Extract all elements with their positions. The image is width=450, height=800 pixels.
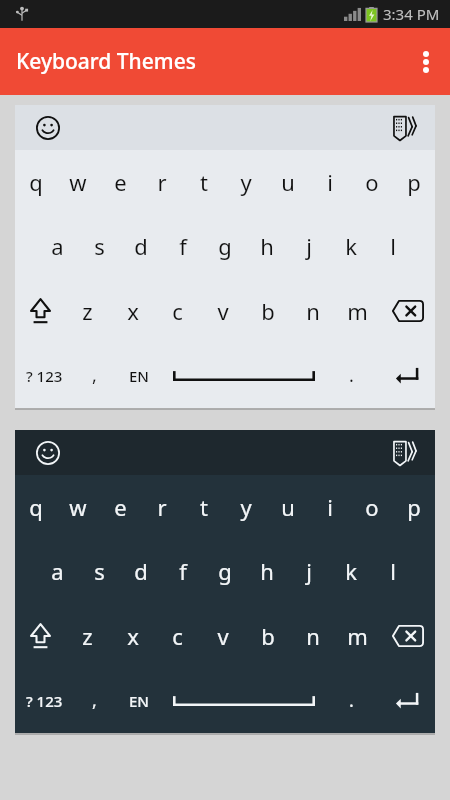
button[interactable]: ? 123	[15, 343, 74, 408]
button[interactable]: x	[110, 278, 155, 343]
button[interactable]: x	[110, 603, 155, 668]
button[interactable]: h	[246, 539, 288, 603]
button[interactable]: j	[288, 539, 330, 603]
button[interactable]: n	[290, 278, 335, 343]
button[interactable]: t	[183, 475, 225, 539]
button[interactable]: Backspace	[380, 278, 435, 343]
button[interactable]: e	[99, 150, 141, 214]
staticText: s	[94, 231, 105, 261]
button[interactable]: z	[65, 278, 110, 343]
button[interactable]: c	[155, 278, 200, 343]
button[interactable]: y	[225, 150, 267, 214]
button[interactable]: b	[245, 603, 290, 668]
button[interactable]: p	[393, 150, 435, 214]
button[interactable]: q	[15, 150, 57, 214]
staticText: f	[179, 556, 187, 586]
staticText: q	[29, 167, 43, 197]
button[interactable]: z	[65, 603, 110, 668]
button[interactable]: ? 123	[15, 668, 74, 733]
button[interactable]: Emoji	[33, 113, 63, 143]
button[interactable]: r	[141, 150, 183, 214]
staticText: t	[200, 492, 208, 522]
button[interactable]: f	[162, 214, 204, 278]
button[interactable]: Emoji	[33, 438, 63, 468]
staticText: d	[134, 231, 148, 261]
button[interactable]: EN	[115, 343, 163, 408]
button[interactable]: o	[351, 150, 393, 214]
staticText: ? 123	[26, 366, 63, 386]
button[interactable]: p	[393, 475, 435, 539]
button[interactable]: q	[15, 475, 57, 539]
button[interactable]: Switch keyboard theme	[390, 438, 420, 468]
staticText: EN	[129, 366, 149, 386]
button[interactable]: w	[57, 150, 99, 214]
button[interactable]: y	[225, 475, 267, 539]
button[interactable]: w	[57, 475, 99, 539]
button[interactable]: l	[372, 539, 414, 603]
button[interactable]: Light keyboard theme	[15, 105, 435, 408]
button[interactable]: More options	[402, 38, 450, 86]
button[interactable]: g	[204, 539, 246, 603]
button[interactable]: Dark keyboard theme	[15, 430, 435, 733]
staticText: l	[390, 556, 396, 586]
staticText: t	[200, 167, 208, 197]
button[interactable]: .	[325, 343, 378, 408]
button[interactable]: d	[120, 539, 162, 603]
staticText: EN	[129, 691, 149, 711]
staticText: n	[306, 296, 320, 326]
button[interactable]: Enter	[378, 343, 435, 408]
staticText: s	[94, 556, 105, 586]
button[interactable]: Space	[163, 343, 325, 408]
staticText: Keyboard Themes	[16, 47, 196, 76]
button[interactable]: a	[36, 214, 78, 278]
button[interactable]: m	[335, 278, 380, 343]
staticText: v	[217, 621, 229, 651]
button[interactable]: v	[200, 603, 245, 668]
button[interactable]: .	[325, 668, 378, 733]
button[interactable]: b	[245, 278, 290, 343]
button[interactable]: a	[36, 539, 78, 603]
button[interactable]: e	[99, 475, 141, 539]
button[interactable]: i	[309, 150, 351, 214]
button[interactable]: s	[78, 214, 120, 278]
button[interactable]: Switch keyboard theme	[390, 113, 420, 143]
button[interactable]: h	[246, 214, 288, 278]
button[interactable]: s	[78, 539, 120, 603]
staticText: w	[69, 492, 87, 522]
button[interactable]: ,	[74, 343, 115, 408]
staticText: k	[345, 231, 357, 261]
button[interactable]: ,	[74, 668, 115, 733]
staticText: l	[390, 231, 396, 261]
button[interactable]: u	[267, 150, 309, 214]
button[interactable]: Enter	[378, 668, 435, 733]
button[interactable]: Backspace	[380, 603, 435, 668]
staticText: e	[114, 492, 127, 522]
button[interactable]: i	[309, 475, 351, 539]
button[interactable]: g	[204, 214, 246, 278]
staticText: m	[347, 621, 368, 651]
button[interactable]: j	[288, 214, 330, 278]
button[interactable]: Shift	[15, 278, 65, 343]
button[interactable]: l	[372, 214, 414, 278]
staticText: a	[51, 231, 64, 261]
staticText: o	[365, 167, 379, 197]
button[interactable]: t	[183, 150, 225, 214]
button[interactable]: d	[120, 214, 162, 278]
button[interactable]: Shift	[15, 603, 65, 668]
staticText: h	[260, 556, 274, 586]
button[interactable]: k	[330, 214, 372, 278]
button[interactable]: u	[267, 475, 309, 539]
button[interactable]: EN	[115, 668, 163, 733]
button[interactable]: r	[141, 475, 183, 539]
button[interactable]: f	[162, 539, 204, 603]
button[interactable]: v	[200, 278, 245, 343]
button[interactable]: Space	[163, 668, 325, 733]
button[interactable]: c	[155, 603, 200, 668]
button[interactable]: o	[351, 475, 393, 539]
staticText: m	[347, 296, 368, 326]
button[interactable]: n	[290, 603, 335, 668]
staticText: z	[82, 621, 93, 651]
button[interactable]: k	[330, 539, 372, 603]
button[interactable]: m	[335, 603, 380, 668]
staticText: z	[82, 296, 93, 326]
